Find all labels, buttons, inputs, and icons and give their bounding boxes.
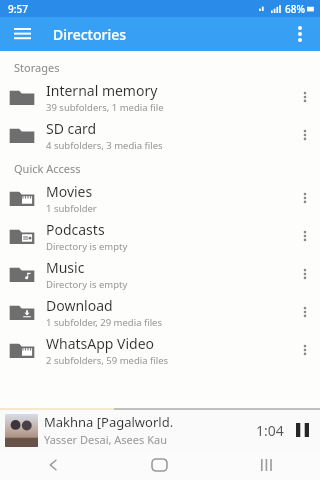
- staticText: 4 subfolders, 3 media files: [46, 139, 163, 152]
- staticText: Music: [46, 258, 85, 277]
- button[interactable]: More options for Movies: [290, 179, 320, 217]
- staticText: Download: [46, 296, 113, 315]
- staticText: Directories: [53, 25, 127, 44]
- button[interactable]: More options for Internal memory: [290, 78, 320, 116]
- staticText: Movies: [46, 182, 93, 201]
- button[interactable]: More options for SD card: [290, 116, 320, 154]
- staticText: Makhna [Pagalworld.: [44, 413, 174, 431]
- staticText: SD card: [46, 119, 97, 138]
- button[interactable]: Recent apps: [213, 450, 320, 480]
- staticText: Internal memory: [46, 81, 158, 100]
- staticText: Directory is empty: [46, 240, 128, 253]
- staticText: 1 subfolder, 29 media files: [46, 316, 163, 329]
- button[interactable]: WhatsApp Video: [0, 331, 320, 369]
- button[interactable]: Music: [0, 255, 320, 293]
- staticText: Quick Access: [14, 161, 81, 176]
- staticText: Podcasts: [46, 220, 105, 239]
- button[interactable]: SD card: [0, 116, 320, 154]
- button[interactable]: More options for Music: [290, 255, 320, 293]
- button[interactable]: Download: [0, 293, 320, 331]
- staticText: 2 subfolders, 59 media files: [46, 354, 169, 367]
- staticText: Storages: [14, 60, 60, 75]
- button[interactable]: More options for WhatsApp Video: [290, 331, 320, 369]
- button[interactable]: Makhna [Pagalworld.: [0, 410, 320, 450]
- staticText: 1 subfolder: [46, 202, 97, 215]
- button[interactable]: Home: [106, 450, 213, 480]
- button[interactable]: Podcasts: [0, 217, 320, 255]
- staticText: 9:57: [8, 2, 28, 16]
- staticText: 39 subfolders, 1 media file: [46, 101, 164, 114]
- button[interactable]: More options for Podcasts: [290, 217, 320, 255]
- button[interactable]: Open navigation drawer: [6, 18, 38, 50]
- staticText: 1:04: [256, 421, 284, 440]
- staticText: Yasser Desai, Asees Kau: [44, 432, 167, 447]
- button[interactable]: More options for Download: [290, 293, 320, 331]
- button[interactable]: Pause: [284, 410, 320, 450]
- button[interactable]: Movies: [0, 179, 320, 217]
- staticText: WhatsApp Video: [46, 334, 155, 353]
- button[interactable]: Back: [0, 450, 106, 480]
- staticText: Directory is empty: [46, 278, 128, 291]
- button[interactable]: Internal memory: [0, 78, 320, 116]
- button[interactable]: More options: [284, 18, 316, 50]
- staticText: 68%: [285, 2, 305, 16]
